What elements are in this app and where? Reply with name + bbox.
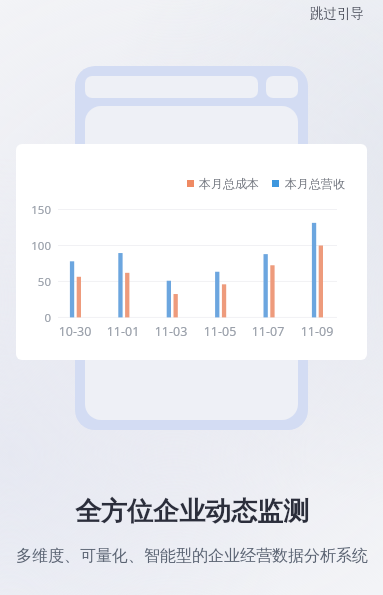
staticText: 11-09 bbox=[297, 323, 337, 340]
staticText: 100 bbox=[31, 238, 51, 254]
staticText: 跳过引导 bbox=[310, 5, 364, 22]
staticText: 150 bbox=[31, 202, 51, 218]
staticText: 11-01 bbox=[103, 323, 143, 340]
staticText: 全方位企业动态监测 bbox=[75, 495, 309, 528]
staticText: 10-30 bbox=[55, 323, 95, 340]
staticText: 50 bbox=[37, 274, 51, 290]
button[interactable]: 跳过引导 bbox=[306, 0, 368, 27]
staticText: 本月总营收 bbox=[285, 176, 345, 190]
staticText: 多维度、可量化、智能型的企业经营数据分析系统 bbox=[16, 546, 368, 566]
staticText: 本月总成本 bbox=[199, 176, 259, 190]
staticText: 0 bbox=[44, 310, 51, 326]
staticText: 11-03 bbox=[151, 323, 191, 340]
staticText: 11-07 bbox=[248, 323, 288, 340]
staticText: 11-05 bbox=[200, 323, 240, 340]
